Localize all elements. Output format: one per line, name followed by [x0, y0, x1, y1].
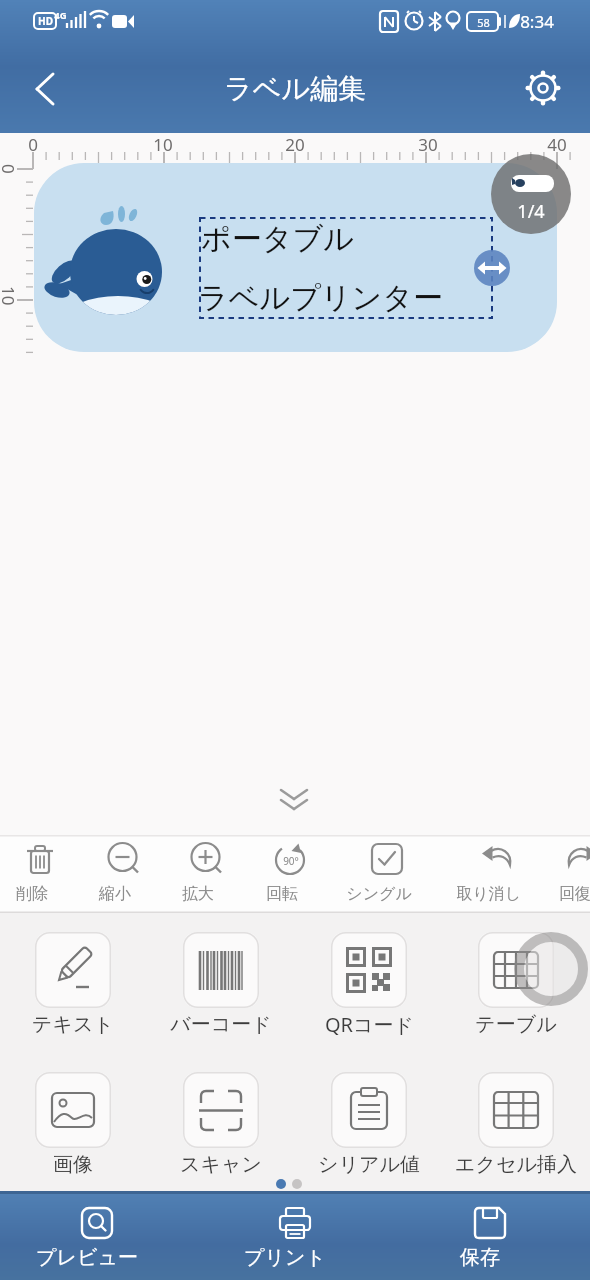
staticText: テキスト [32, 1012, 114, 1037]
staticText: 10 [0, 286, 20, 306]
staticText: 回転 [266, 884, 298, 904]
button[interactable]: 取り消し [456, 835, 538, 913]
staticText: 90° [283, 854, 299, 868]
staticText: 8:34 [520, 10, 554, 33]
button[interactable]: 1/4 [491, 154, 571, 234]
staticText: 回復 [559, 884, 590, 904]
staticText: テーブル [475, 1012, 557, 1037]
staticText: ラベルプリンター [198, 279, 443, 317]
staticText: シリアル値 [318, 1152, 420, 1177]
staticText: プレビュー [36, 1245, 138, 1270]
staticText: ラベル編集 [224, 71, 366, 106]
staticText: ポータブル [201, 220, 354, 258]
button[interactable]: 保存 [430, 1191, 550, 1280]
staticText: スキャン [180, 1152, 262, 1177]
staticText: バーコード [170, 1012, 272, 1037]
button[interactable] [518, 63, 568, 113]
staticText: 拡大 [182, 884, 214, 904]
button[interactable] [183, 932, 259, 1008]
button[interactable] [20, 65, 70, 115]
staticText: 20 [285, 133, 305, 156]
staticText: 画像 [53, 1152, 93, 1177]
staticText: 保存 [460, 1245, 500, 1270]
button[interactable]: 回復 [543, 835, 590, 913]
staticText: 58 [477, 15, 490, 30]
button[interactable] [331, 932, 407, 1008]
staticText: 10 [153, 133, 173, 156]
button[interactable]: 削除 [0, 835, 82, 913]
button[interactable]: プリント [235, 1191, 355, 1280]
button[interactable] [34, 163, 557, 352]
button[interactable] [35, 932, 111, 1008]
staticText: 30 [418, 133, 438, 156]
button[interactable] [35, 1072, 111, 1148]
button[interactable]: プレビュー [37, 1191, 157, 1280]
staticText: 0 [28, 133, 38, 156]
staticText: 4G [54, 9, 67, 22]
staticText: HD [38, 14, 53, 28]
staticText: 削除 [16, 884, 48, 904]
button[interactable]: 拡大 [166, 835, 248, 913]
staticText: 取り消し [456, 884, 521, 904]
button[interactable] [474, 250, 510, 286]
button[interactable]: シングル [347, 835, 429, 913]
button[interactable] [478, 932, 554, 1008]
staticText: 1/4 [517, 199, 545, 223]
staticText: QRコード [325, 1011, 414, 1038]
staticText: プリント [244, 1245, 326, 1270]
button[interactable] [331, 1072, 407, 1148]
staticText: シングル [346, 884, 412, 904]
button[interactable] [478, 1072, 554, 1148]
staticText: 40 [547, 133, 567, 156]
staticText: 縮小 [99, 884, 131, 904]
button[interactable]: 回転 [250, 835, 332, 913]
staticText: 0 [0, 164, 20, 174]
button[interactable]: 縮小 [83, 835, 165, 913]
button[interactable] [507, 925, 590, 1013]
staticText: エクセル挿入 [455, 1152, 577, 1177]
button[interactable] [183, 1072, 259, 1148]
